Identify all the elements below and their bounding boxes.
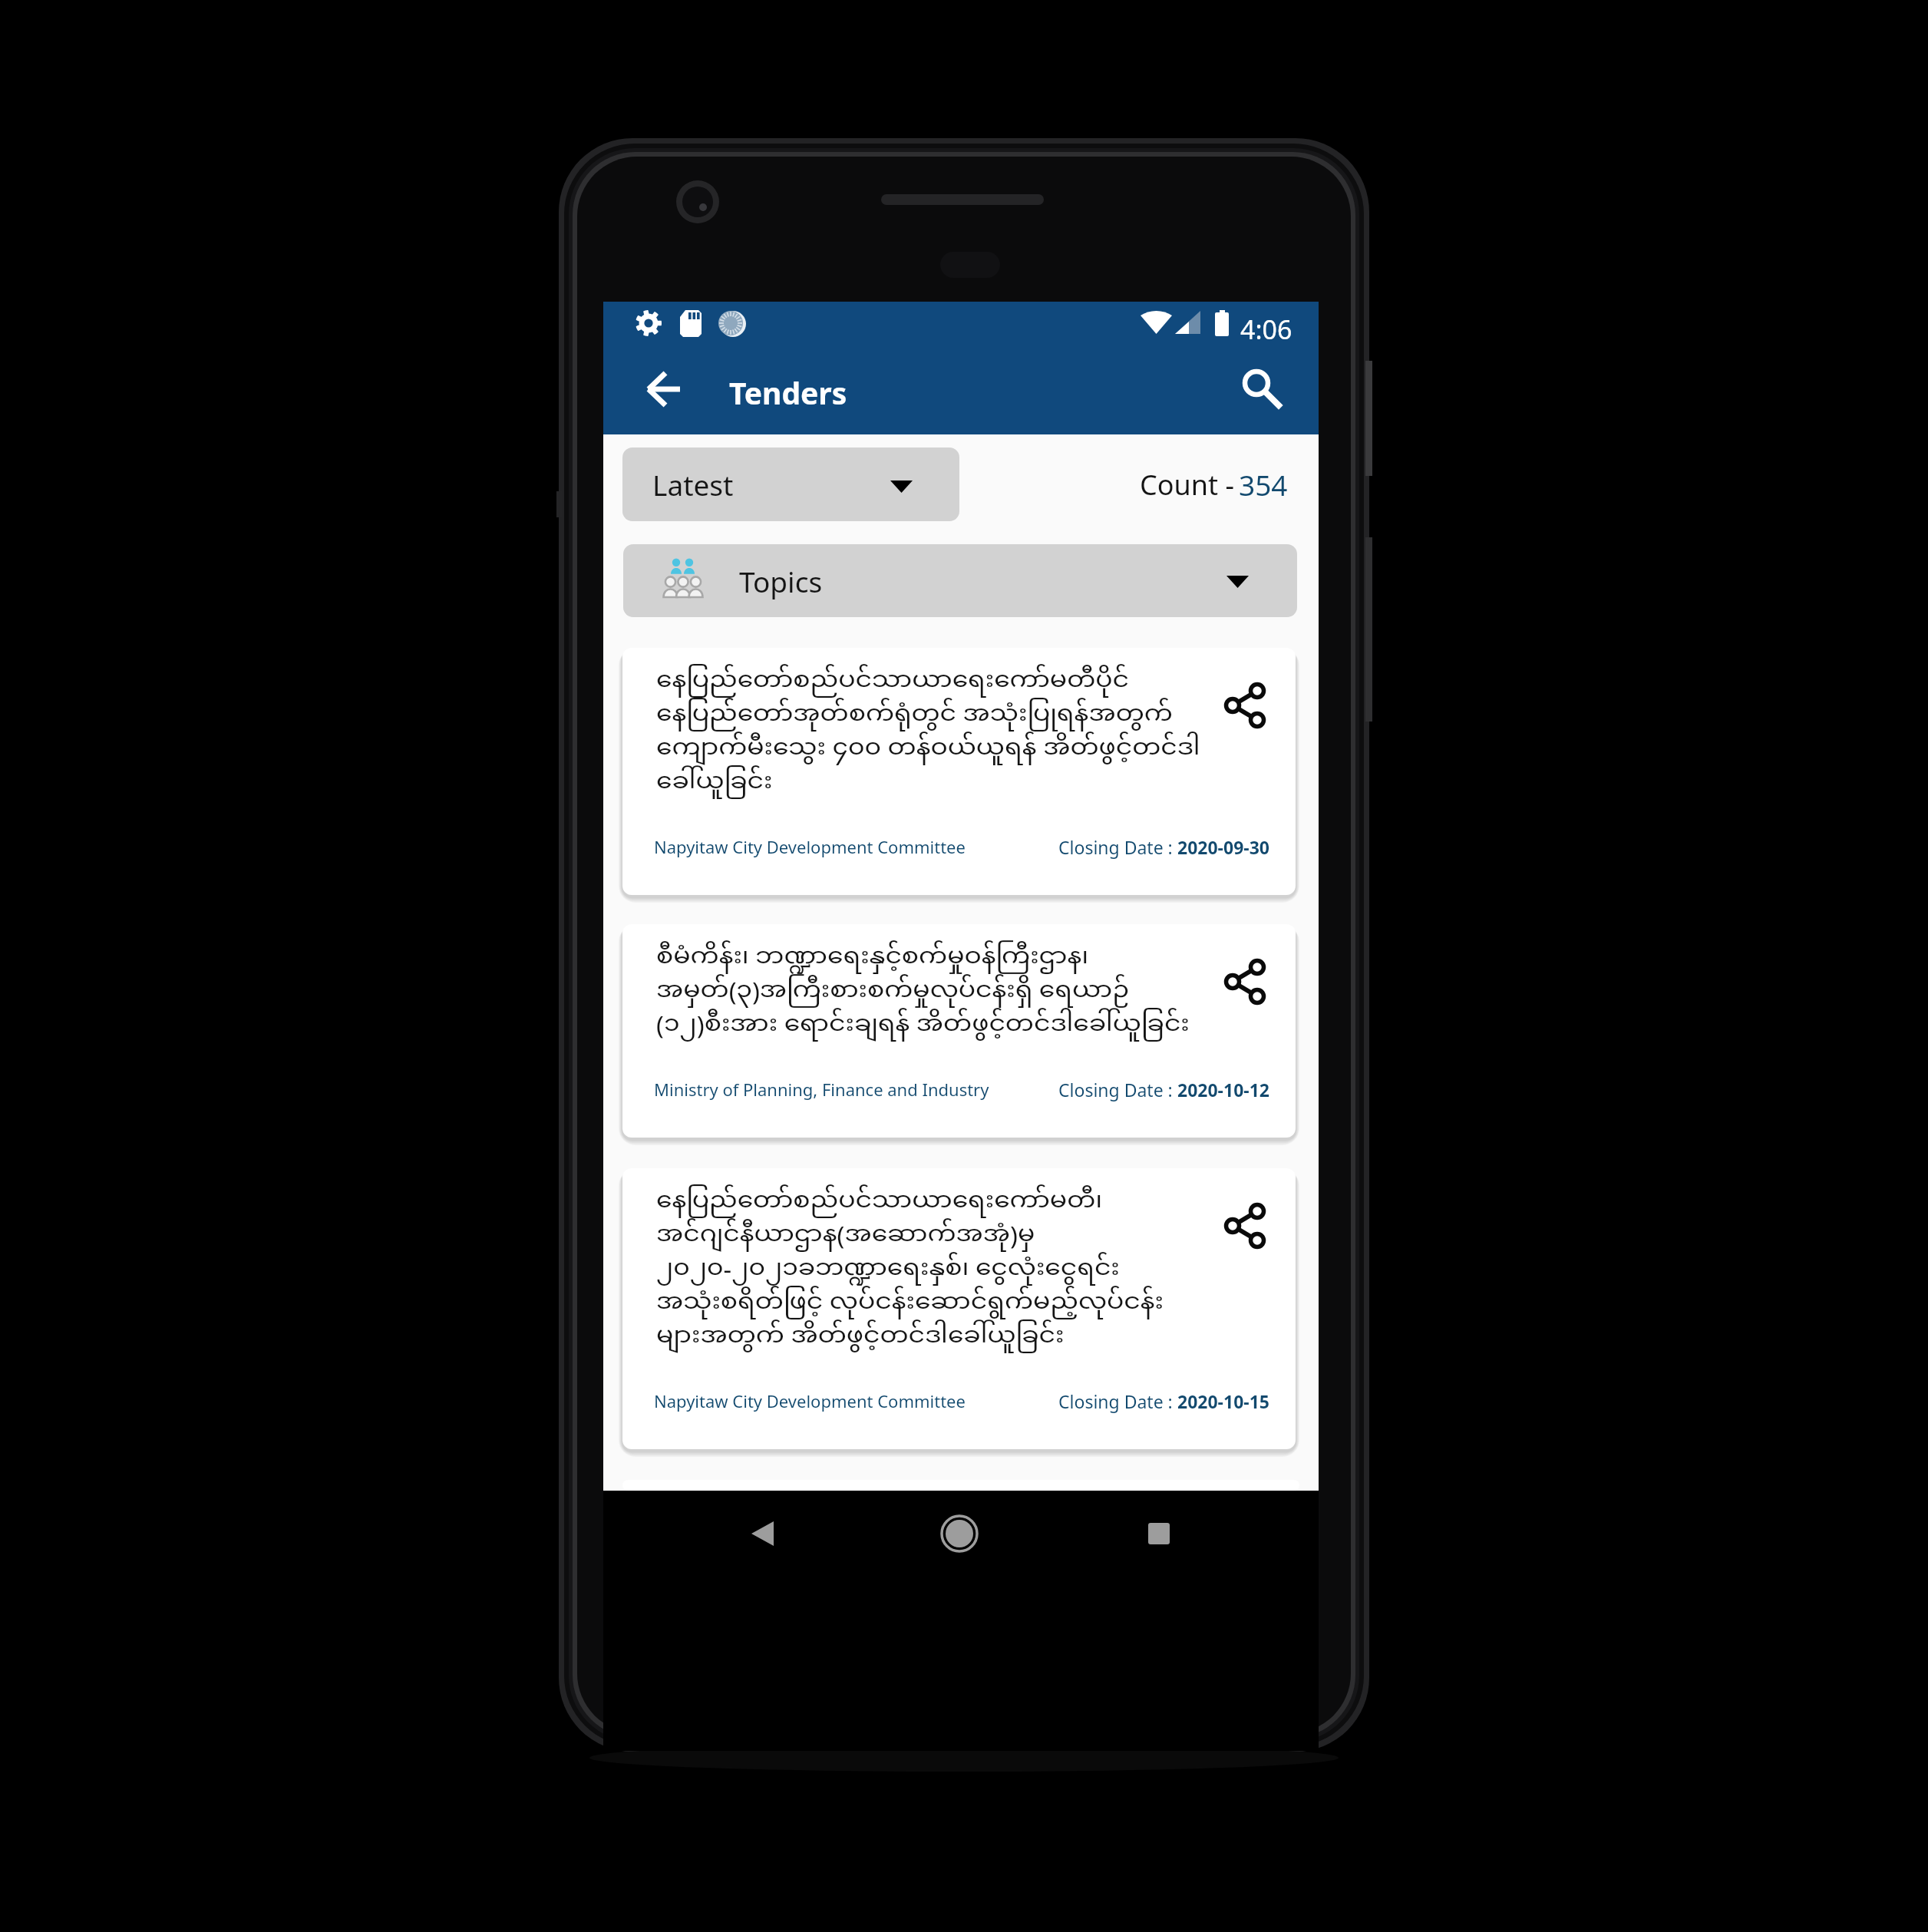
staticText: Tenders [729, 372, 847, 413]
button[interactable]: စီမံကိန်း၊ ဘဏ္ဍာရေးနှင့်စက်မှုဝန်ကြီးဌာန… [622, 924, 1296, 1138]
staticText: Napyitaw City Development Committee [654, 1389, 966, 1412]
staticText: Ministry of Planning, Finance and Indust… [654, 1078, 989, 1101]
staticText: အမှတ်(၃)အကြီးစားစက်မှုလုပ်ငန်းရှိ ရေယာဉ် [656, 974, 1130, 1009]
button[interactable]: Recent apps [1128, 1503, 1190, 1564]
staticText: 4:06 [1240, 312, 1292, 347]
button[interactable]: နေပြည်တော်စည်ပင်သာယာရေးကော်မတီ၊ [622, 1168, 1296, 1449]
button[interactable]: Topics [623, 544, 1297, 617]
button[interactable]: Back [736, 1503, 797, 1564]
staticText: Closing Date : [1058, 1078, 1177, 1101]
staticText: Closing Date : [1058, 835, 1177, 859]
staticText: 2020-10-12 [1177, 1078, 1269, 1101]
staticText: Topics [739, 562, 823, 600]
button[interactable]: Share [1215, 663, 1279, 728]
staticText: 354 [1239, 465, 1288, 504]
button[interactable]: Back [620, 366, 685, 431]
staticText: ခေါ်ယူခြင်း [656, 765, 773, 800]
staticText: နေပြည်တော်အုတ်စက်ရုံတွင် အသုံးပြုရန်အတွက… [656, 698, 1173, 732]
staticText: Latest [652, 465, 734, 504]
staticText: ကျောက်မီးသွေး ၄၀၀ တန်ဝယ်ယူရန် အိတ်ဖွင့်တ… [656, 732, 1200, 766]
button[interactable]: Search [1221, 365, 1289, 432]
staticText: အင်ဂျင်နီယာဌာန(အဆောက်အအုံ)မှ [656, 1218, 1035, 1253]
staticText: အသုံးစရိတ်ဖြင့် လုပ်ငန်းဆောင်ရွက်မည့်လုပ… [656, 1286, 1164, 1320]
staticText: (၁၂)စီးအား ရောင်းချရန် အိတ်ဖွင့်တင်ဒါခေါ… [656, 1008, 1190, 1042]
staticText: ၂၀၂၀-၂၀၂၁ခဘဏ္ဍာရေးနှစ်၊ ငွေလုံးငွေရင်း [656, 1252, 1120, 1286]
staticText: နေပြည်တော်စည်ပင်သာယာရေးကော်မတီပိုင် [656, 664, 1130, 698]
button[interactable]: Latest [622, 447, 959, 521]
staticText: များအတွက် အိတ်ဖွင့်တင်ဒါခေါ်ယူခြင်း [656, 1319, 1065, 1354]
button[interactable]: နေပြည်တော်စည်ပင်သာယာရေးကော်မတီပိုင် [622, 648, 1296, 895]
button[interactable]: Home [929, 1503, 990, 1564]
staticText: Count - [1140, 466, 1234, 504]
staticText: 2020-09-30 [1177, 835, 1269, 859]
button[interactable]: Share [1215, 940, 1279, 1004]
staticText: Closing Date : [1058, 1389, 1177, 1413]
staticText: Napyitaw City Development Committee [654, 835, 966, 858]
staticText: နေပြည်တော်စည်ပင်သာယာရေးကော်မတီ၊ [656, 1184, 1103, 1219]
staticText: 2020-10-15 [1177, 1389, 1269, 1413]
button[interactable]: Share [1215, 1184, 1279, 1248]
staticText: စီမံကိန်း၊ ဘဏ္ဍာရေးနှင့်စက်မှုဝန်ကြီးဌာန… [656, 940, 1089, 975]
